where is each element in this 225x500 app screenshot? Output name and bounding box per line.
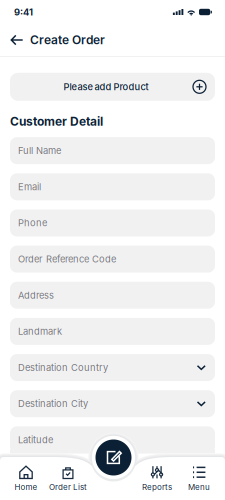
staticText: Home <box>14 482 37 492</box>
button[interactable]: Back <box>9 30 25 50</box>
button[interactable]: Address <box>10 282 215 309</box>
staticText: Please add Product <box>63 81 148 92</box>
button[interactable]: Order Reference Code <box>10 246 215 273</box>
button[interactable]: Order List <box>47 466 89 491</box>
staticText: Destination City <box>18 398 88 409</box>
staticText: Phone <box>18 217 47 228</box>
staticText: Destination Country <box>18 362 108 373</box>
button[interactable]: Email <box>10 173 215 200</box>
button[interactable]: Destination Country <box>10 354 215 381</box>
staticText: Reports <box>142 482 172 492</box>
staticText: Order List <box>49 482 87 492</box>
button[interactable]: New Order <box>0 457 225 500</box>
button[interactable]: Destination City <box>10 390 215 417</box>
staticText: Latitude <box>18 434 53 445</box>
staticText: Email <box>18 181 41 192</box>
button[interactable]: Reports <box>136 466 178 491</box>
staticText: Landmark <box>18 326 62 337</box>
staticText: Full Name <box>18 145 61 156</box>
staticText: Create Order <box>30 33 105 47</box>
staticText: Menu <box>188 482 210 492</box>
staticText: Customer Detail <box>10 114 103 128</box>
button[interactable]: Landmark <box>10 318 215 345</box>
button[interactable]: Latitude <box>10 426 215 453</box>
staticText: Order Reference Code <box>18 254 116 265</box>
button[interactable]: Menu <box>178 466 220 491</box>
button[interactable]: Phone <box>10 209 215 236</box>
staticText: 9:41 <box>14 6 33 17</box>
button[interactable]: Please add Product <box>10 73 215 101</box>
staticText: Address <box>18 290 54 301</box>
button[interactable]: Home <box>5 466 47 491</box>
button[interactable]: Full Name <box>10 137 215 164</box>
